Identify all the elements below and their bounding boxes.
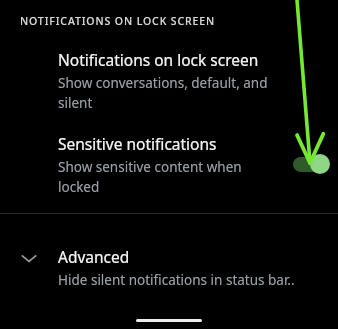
staticText: Hide silent notifications in status bar.… bbox=[58, 271, 295, 289]
button[interactable]: Sensitive notifications toggle, on bbox=[293, 151, 333, 177]
staticText: Notifications on lock screen bbox=[58, 49, 259, 70]
staticText: Sensitive notifications bbox=[58, 133, 217, 154]
button[interactable]: Advanced bbox=[0, 214, 338, 290]
staticText: Show conversations, default, and silent bbox=[58, 74, 298, 112]
button[interactable]: Notifications on lock screen bbox=[0, 40, 338, 127]
staticText: Advanced bbox=[58, 246, 130, 267]
staticText: Show sensitive content when locked bbox=[58, 158, 285, 196]
button[interactable]: Sensitive notifications bbox=[0, 127, 338, 213]
staticText: NOTIFICATIONS ON LOCK SCREEN bbox=[20, 14, 216, 28]
